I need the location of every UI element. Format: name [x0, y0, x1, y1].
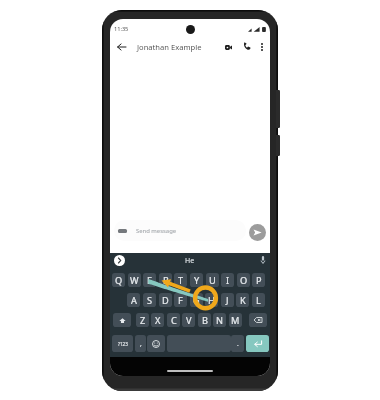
button[interactable]: Back [111, 36, 132, 57]
button[interactable]: H [205, 293, 218, 307]
button[interactable]: . [231, 335, 244, 352]
staticText: J [226, 294, 229, 307]
button[interactable]: J [221, 293, 234, 307]
staticText: C [171, 314, 177, 327]
staticText: I [226, 274, 230, 287]
staticText: L [256, 294, 261, 307]
staticText: Y [194, 274, 200, 287]
staticText: . [237, 339, 239, 348]
button[interactable]: Emoji [147, 335, 165, 352]
staticText: N [216, 314, 223, 327]
staticText: Jonathan Example [137, 42, 202, 52]
staticText: W [130, 274, 139, 287]
button[interactable]: Backspace [249, 313, 267, 327]
button[interactable]: A [127, 293, 140, 307]
button[interactable]: Send message [114, 220, 246, 241]
staticText: H [208, 294, 215, 307]
staticText: V [186, 314, 192, 327]
button[interactable]: Expand toolbar [114, 255, 125, 266]
button[interactable]: ?123 [112, 335, 133, 352]
button[interactable]: M [229, 313, 242, 327]
button[interactable]: U [206, 273, 219, 287]
staticText: U [209, 274, 216, 287]
button[interactable]: D [159, 293, 172, 307]
staticText: ?123 [118, 341, 128, 347]
button[interactable]: G [190, 293, 203, 307]
staticText: T [178, 274, 184, 287]
staticText: M [231, 314, 240, 327]
button[interactable]: P [252, 273, 265, 287]
staticText: K [240, 294, 246, 307]
staticText: D [162, 294, 169, 307]
staticText: F [178, 294, 183, 307]
button[interactable]: Enter [246, 335, 269, 352]
button[interactable]: More options [252, 37, 270, 57]
staticText: 11:35 [114, 25, 129, 33]
staticText: Z [140, 314, 146, 327]
button[interactable]: Z [136, 313, 149, 327]
staticText: Q [115, 274, 123, 287]
staticText: , [140, 339, 142, 348]
button[interactable]: L [252, 293, 265, 307]
button[interactable]: Y [190, 273, 203, 287]
button[interactable]: T [174, 273, 187, 287]
button[interactable]: Send [249, 224, 266, 241]
staticText: X [155, 314, 161, 327]
button[interactable]: Voice input [257, 254, 269, 266]
button[interactable]: S [143, 293, 156, 307]
staticText: S [147, 294, 153, 307]
button[interactable]: Shift [113, 313, 131, 327]
staticText: E [147, 274, 153, 287]
button[interactable]: F [174, 293, 187, 307]
staticText: He [185, 256, 195, 266]
button[interactable]: K [236, 293, 249, 307]
staticText: B [202, 314, 208, 327]
staticText: G [193, 294, 200, 307]
button[interactable]: I [221, 273, 234, 287]
button[interactable]: Video call [218, 37, 238, 57]
staticText: Send message [136, 227, 177, 235]
staticText: O [240, 274, 248, 287]
staticText: A [131, 294, 137, 307]
button[interactable]: , [135, 335, 146, 352]
button[interactable]: C [167, 313, 180, 327]
button[interactable]: X [151, 313, 164, 327]
button[interactable]: Call [237, 36, 257, 56]
button[interactable]: O [237, 273, 250, 287]
button[interactable]: W [128, 273, 141, 287]
button[interactable]: Q [112, 273, 125, 287]
button[interactable]: V [182, 313, 195, 327]
button[interactable]: N [213, 313, 226, 327]
staticText: P [256, 274, 262, 287]
staticText: R [163, 274, 169, 287]
button[interactable]: R [159, 273, 172, 287]
button[interactable]: E [143, 273, 156, 287]
button[interactable]: B [198, 313, 211, 327]
